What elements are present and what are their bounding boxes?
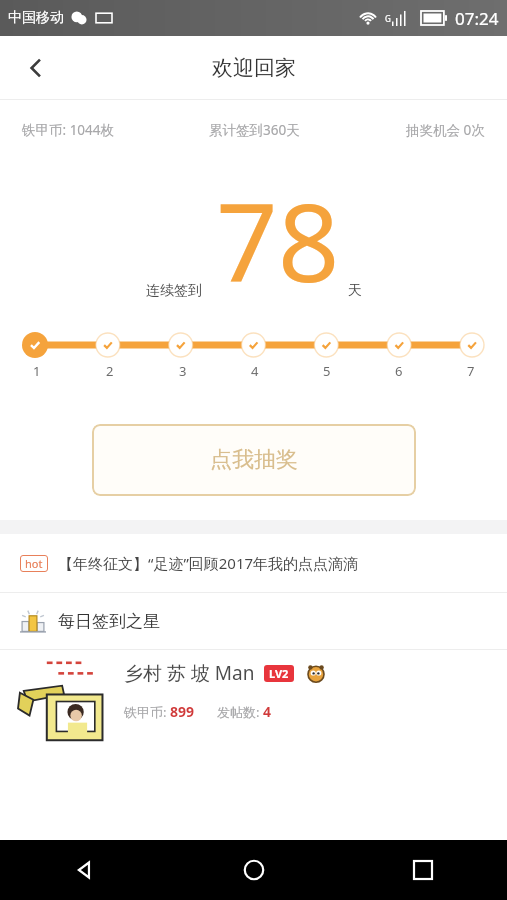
staticText: 天 bbox=[348, 282, 362, 300]
staticText: 07:24 bbox=[455, 7, 499, 30]
staticText: 点我抽奖 bbox=[210, 446, 298, 474]
staticText: hot bbox=[25, 556, 43, 571]
staticText: 899 bbox=[170, 702, 195, 721]
staticText: 铁甲币: 1044枚 bbox=[22, 121, 115, 139]
button[interactable]: Home bbox=[169, 840, 338, 900]
staticText: 7 bbox=[467, 362, 475, 380]
staticText: 1 bbox=[33, 362, 41, 380]
staticText: 【年终征文】“足迹”回顾2017年我的点点滴滴 bbox=[58, 553, 359, 573]
staticText: G bbox=[385, 13, 391, 24]
staticText: 连续签到 bbox=[146, 282, 202, 300]
staticText: 累计签到360天 bbox=[209, 121, 300, 139]
staticText: 6 bbox=[395, 362, 403, 380]
staticText: 乡村 苏 坡 Man bbox=[124, 660, 255, 686]
button[interactable]: Back bbox=[12, 44, 60, 92]
staticText: 5 bbox=[323, 362, 331, 380]
staticText: 每日签到之星 bbox=[58, 611, 160, 632]
staticText: 抽奖机会 0次 bbox=[406, 121, 485, 139]
button[interactable]: Back bbox=[0, 840, 169, 900]
staticText: 4 bbox=[263, 702, 272, 721]
staticText: 铁甲币: bbox=[124, 703, 167, 721]
staticText: 3 bbox=[179, 362, 187, 380]
button[interactable]: Recent apps bbox=[338, 840, 507, 900]
staticText: LV2 bbox=[269, 666, 289, 681]
button[interactable]: 乡村 苏 坡 Man bbox=[0, 650, 507, 745]
staticText: 2 bbox=[106, 362, 114, 380]
button[interactable]: hot bbox=[0, 534, 507, 592]
staticText: 4 bbox=[251, 362, 259, 380]
staticText: 中国移动 bbox=[8, 9, 64, 27]
staticText: 78 bbox=[216, 167, 340, 314]
staticText: 发帖数: bbox=[217, 703, 260, 721]
button[interactable]: 点我抽奖 bbox=[92, 424, 416, 496]
staticText: 欢迎回家 bbox=[212, 55, 296, 81]
